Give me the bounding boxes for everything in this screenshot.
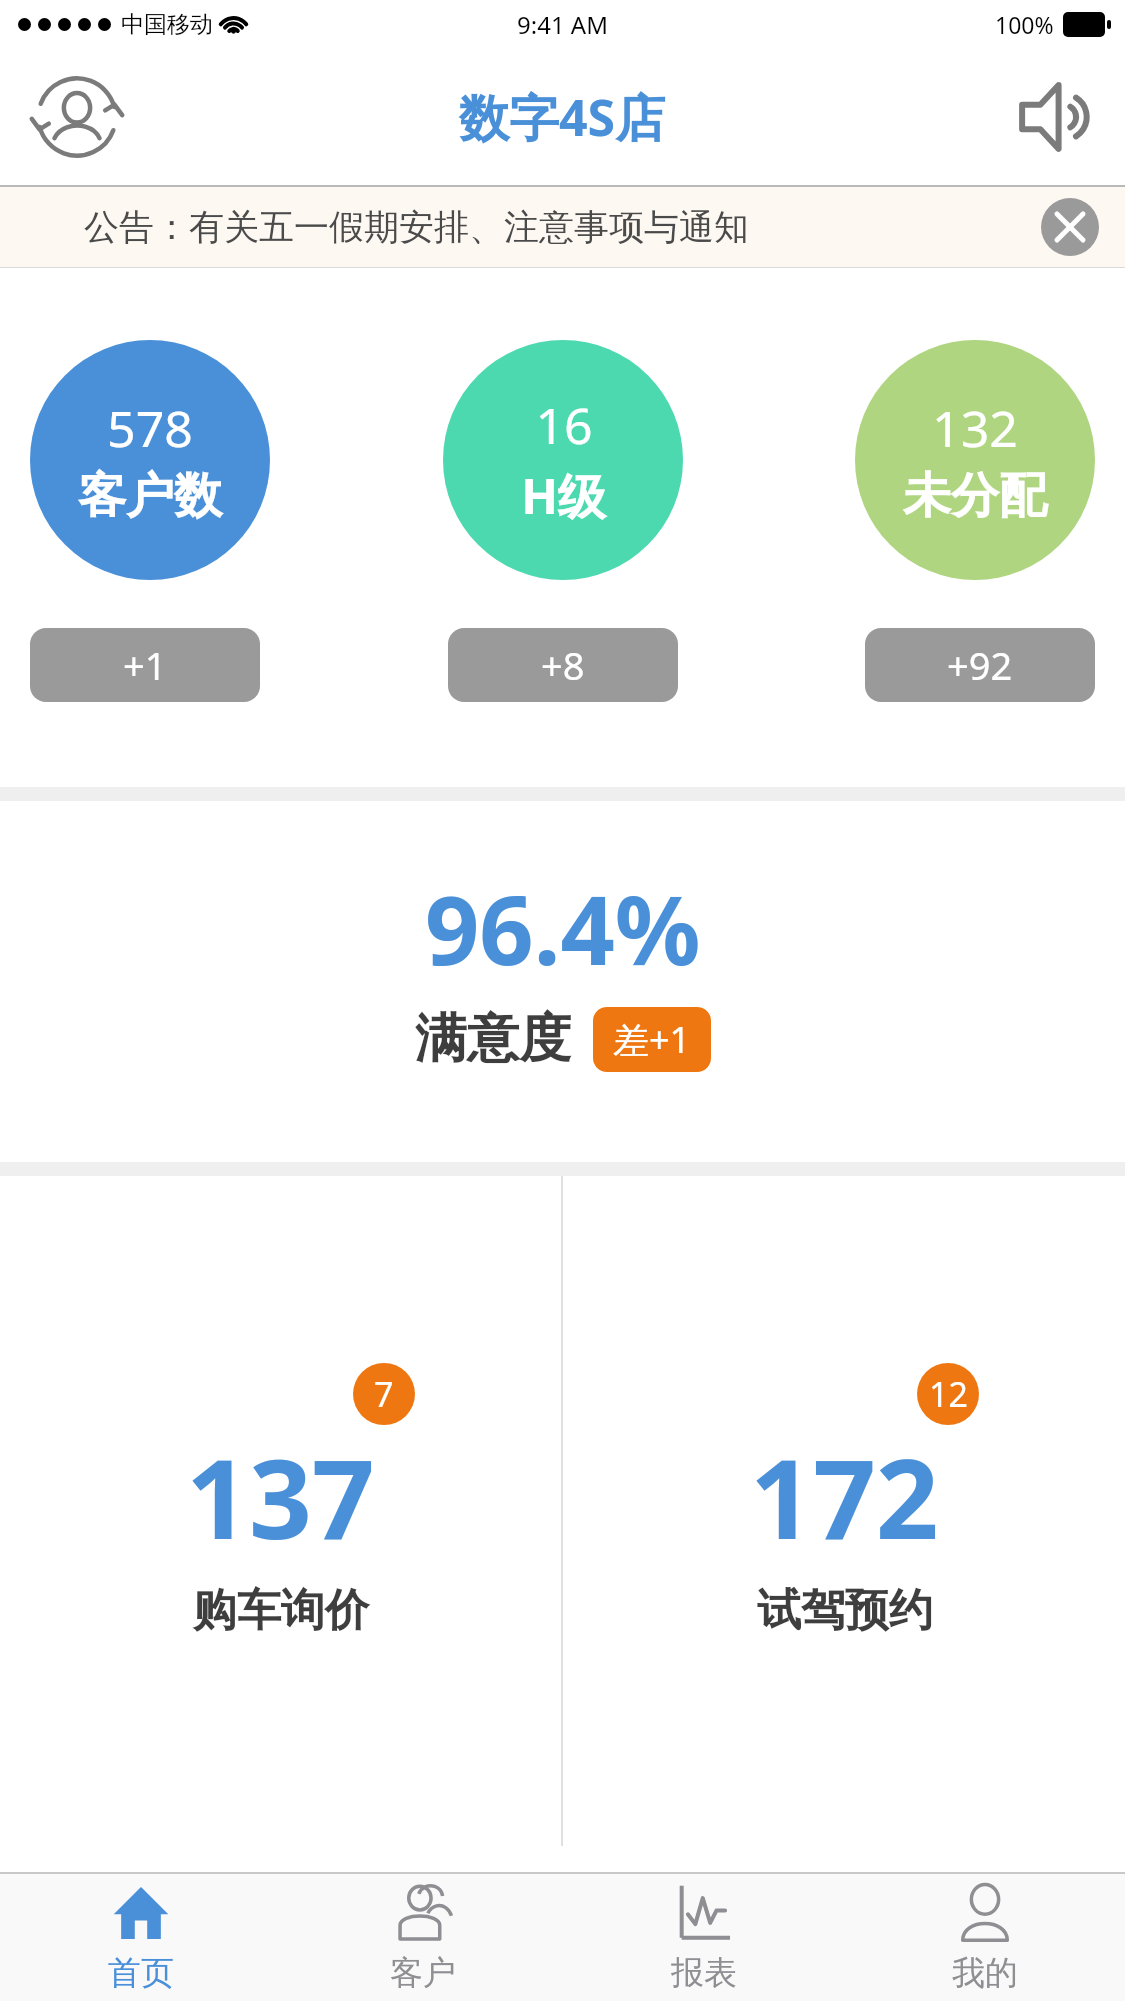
staticText: +1 — [123, 639, 167, 691]
staticText: 132 — [932, 394, 1018, 462]
staticText: 137 — [186, 1421, 375, 1571]
button[interactable]: 我的 — [844, 1874, 1125, 2001]
button[interactable]: 137 — [0, 1176, 561, 1872]
button[interactable]: 公告：有关五一假期安排、注意事项与通知 — [0, 187, 1125, 267]
staticText: 96.4% — [425, 863, 701, 992]
staticText: 我的 — [952, 1952, 1018, 1994]
button[interactable]: +8 — [448, 628, 678, 702]
staticText: 购车询价 — [193, 1583, 369, 1638]
staticText: 中国移动 — [121, 10, 213, 39]
staticText: 未分配 — [903, 466, 1047, 526]
staticText: H级 — [521, 463, 606, 529]
button[interactable]: +1 — [30, 628, 260, 702]
staticText: 100% — [995, 9, 1054, 40]
button[interactable]: Close announcement — [1041, 198, 1099, 256]
button[interactable]: 客户 — [282, 1874, 563, 2001]
staticText: 16 — [535, 391, 593, 459]
staticText: 差+1 — [613, 1015, 691, 1064]
staticText: 9:41 AM — [517, 8, 608, 41]
staticText: +8 — [541, 639, 585, 691]
button[interactable]: 96.4% — [0, 801, 1125, 1162]
staticText: 12 — [929, 1371, 968, 1417]
button[interactable]: Sound — [1001, 67, 1101, 167]
staticText: 试驾预约 — [757, 1583, 933, 1638]
staticText: 578 — [107, 394, 193, 462]
button[interactable]: +92 — [865, 628, 1095, 702]
button[interactable]: 172 — [563, 1176, 1125, 1872]
staticText: 客户 — [390, 1952, 456, 1994]
button[interactable]: 578 — [30, 340, 270, 580]
staticText: 公告：有关五一假期安排、注意事项与通知 — [84, 205, 749, 249]
staticText: 7 — [374, 1371, 394, 1417]
staticText: 172 — [750, 1421, 939, 1571]
staticText: 数字4S店 — [459, 83, 666, 151]
button[interactable]: 报表 — [563, 1874, 844, 2001]
staticText: 首页 — [108, 1952, 174, 1994]
button[interactable]: 16 — [443, 340, 683, 580]
staticText: 客户数 — [78, 466, 222, 526]
staticText: +92 — [947, 639, 1013, 691]
button[interactable]: 132 — [855, 340, 1095, 580]
staticText: 满意度 — [415, 1006, 571, 1072]
staticText: 报表 — [671, 1952, 737, 1994]
button[interactable]: 首页 — [0, 1874, 282, 2001]
button[interactable]: Switch account — [22, 62, 132, 172]
